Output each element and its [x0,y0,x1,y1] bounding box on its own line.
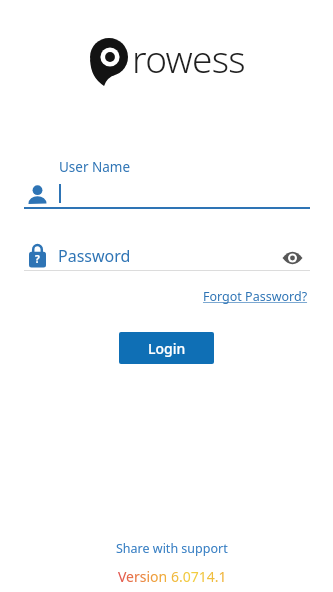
button[interactable] [279,246,306,270]
staticText: Login [148,339,186,358]
button[interactable]: Forgot Password? [202,288,308,308]
staticText: Version 6.0714.1 [118,567,227,586]
button[interactable] [24,180,310,207]
staticText: Share with support [116,540,228,557]
button[interactable]: Login [119,332,214,364]
staticText: rowess [132,33,245,83]
staticText: Forgot Password? [203,288,308,305]
button[interactable]: Share with support [116,540,228,557]
staticText: ? [35,252,40,266]
staticText: Password [58,245,131,267]
staticText: User Name [59,158,131,176]
